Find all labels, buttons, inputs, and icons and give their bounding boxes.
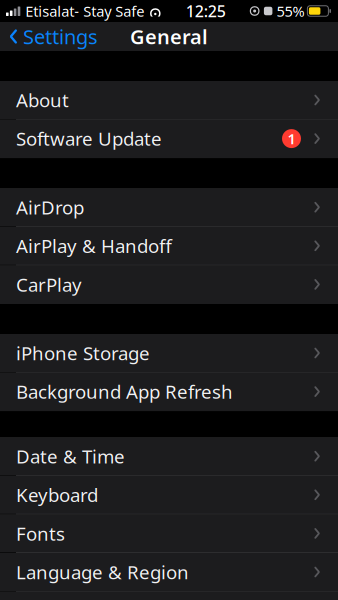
staticText: AirPlay & Handoff <box>16 233 172 258</box>
staticText: About <box>16 88 69 112</box>
staticText: Settings <box>23 23 98 50</box>
button[interactable]: AirDrop <box>0 188 338 227</box>
staticText: 12:25 <box>186 0 226 22</box>
staticText: Language & Region <box>16 560 189 584</box>
staticText: Background App Refresh <box>16 379 233 404</box>
button[interactable]: iPhone Storage <box>0 334 338 373</box>
button[interactable]: CarPlay <box>0 265 338 304</box>
button[interactable]: About <box>0 81 338 120</box>
staticText: Fonts <box>16 521 65 546</box>
staticText: Software Update <box>16 126 162 151</box>
staticText: iPhone Storage <box>16 341 150 365</box>
button[interactable]: Language & Region <box>0 553 338 592</box>
staticText: Etisalat- Stay Safe <box>25 1 144 21</box>
button[interactable]: AirPlay & Handoff <box>0 227 338 265</box>
button[interactable]: Settings <box>0 18 98 55</box>
staticText: Date & Time <box>16 444 125 469</box>
staticText: Keyboard <box>16 482 98 507</box>
button[interactable]: Date & Time <box>0 437 338 476</box>
staticText: AirDrop <box>16 195 84 220</box>
button[interactable]: Fonts <box>0 514 338 553</box>
staticText: General <box>130 23 208 50</box>
button[interactable]: Software Update <box>0 120 338 158</box>
button[interactable]: Keyboard <box>0 476 338 514</box>
staticText: 1 <box>287 129 295 148</box>
staticText: CarPlay <box>16 272 82 297</box>
staticText: 55% <box>276 1 304 21</box>
button[interactable]: Background App Refresh <box>0 373 338 411</box>
